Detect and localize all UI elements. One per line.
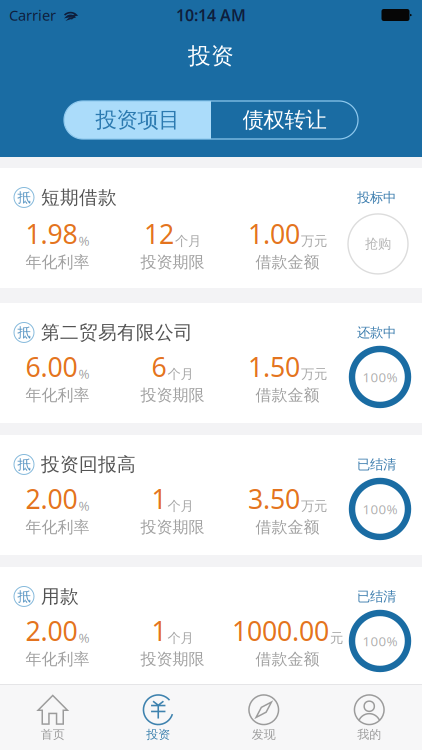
staticText: 年化利率 [25,649,89,669]
button[interactable]: 发现 [211,684,316,750]
staticText: 万元 [301,366,327,382]
staticText: 1 [151,481,166,516]
staticText: 投资期限 [140,252,204,272]
staticText: 还款中 [357,324,396,341]
staticText: 已结清 [357,588,396,605]
button[interactable]: 抵 [0,567,422,687]
staticText: 抵 [17,456,30,473]
staticText: 个月 [167,630,193,646]
button[interactable]: 首页 [0,684,105,750]
staticText: 个月 [175,233,201,249]
staticText: 投资期限 [140,649,204,669]
staticText: 抵 [17,588,30,605]
staticText: 3.50 [248,481,300,516]
button[interactable]: 投资项目 [64,101,211,139]
staticText: 抢购 [365,236,391,252]
staticText: 投资项目 [95,107,179,133]
staticText: 我的 [357,727,381,742]
staticText: 发现 [252,727,276,742]
staticText: 1 [151,613,166,648]
staticText: 10:14 AM [176,4,246,26]
staticText: 投资 [188,42,234,70]
button[interactable]: 我的 [316,684,422,750]
staticText: 1.00 [248,216,300,251]
button[interactable]: 投资 [105,684,211,750]
staticText: 投资 [146,727,170,742]
staticText: 短期借款 [41,186,117,209]
staticText: 借款金额 [255,252,319,272]
staticText: 万元 [301,498,327,514]
staticText: 投资期限 [140,385,204,405]
staticText: % [78,629,89,646]
staticText: 年化利率 [25,517,89,537]
button[interactable]: 抵 [0,303,422,423]
staticText: 100% [362,500,397,518]
staticText: Carrier [9,5,56,25]
staticText: 元 [330,630,343,646]
staticText: 借款金额 [255,385,319,405]
button[interactable]: 抵 [0,168,422,288]
staticText: 100% [362,632,397,650]
staticText: 2.00 [25,481,77,516]
staticText: 1.50 [248,349,300,384]
staticText: 用款 [41,585,79,608]
button[interactable]: 债权转让 [211,101,358,139]
staticText: 第二贸易有限公司 [41,321,193,344]
staticText: 年化利率 [25,252,89,272]
staticText: % [78,497,89,514]
staticText: 债权转让 [242,107,326,133]
staticText: 借款金额 [255,649,319,669]
staticText: 个月 [167,498,193,514]
staticText: 投资期限 [140,517,204,537]
staticText: 首页 [41,727,65,742]
staticText: % [78,365,89,382]
button[interactable]: 抵 [0,435,422,555]
staticText: 1.98 [25,216,77,251]
staticText: 抵 [17,324,30,341]
staticText: 年化利率 [25,385,89,405]
staticText: 投标中 [357,189,396,206]
staticText: 抵 [17,189,30,206]
staticText: 1000.00 [232,613,329,648]
staticText: 个月 [167,366,193,382]
staticText: 投资回报高 [41,453,136,476]
staticText: 100% [362,368,397,386]
staticText: 已结清 [357,456,396,473]
staticText: 万元 [301,233,327,249]
staticText: 12 [144,216,174,251]
staticText: 借款金额 [255,517,319,537]
staticText: 6 [151,349,166,384]
staticText: 2.00 [25,613,77,648]
staticText: 6.00 [25,349,77,384]
staticText: % [78,232,89,249]
